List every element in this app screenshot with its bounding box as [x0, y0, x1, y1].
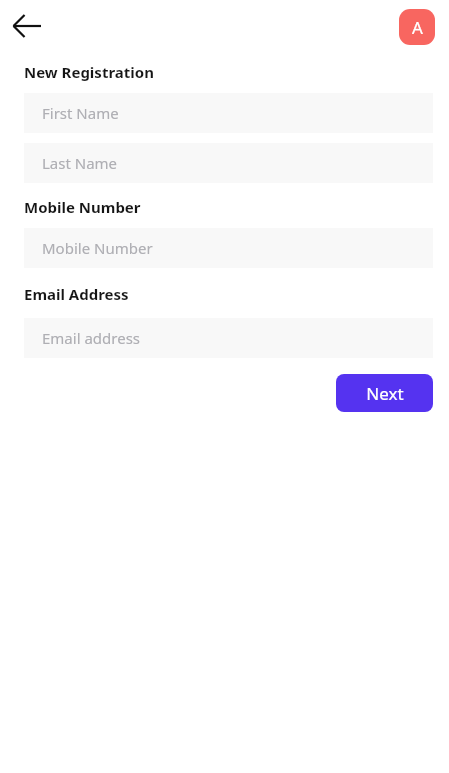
button[interactable]: Back: [6, 6, 48, 46]
button[interactable]: Email address: [24, 318, 433, 358]
staticText: A: [412, 16, 423, 39]
staticText: Last Name: [42, 153, 118, 173]
staticText: Mobile Number: [24, 197, 141, 217]
staticText: New Registration: [24, 62, 154, 82]
staticText: Email address: [42, 328, 141, 348]
button[interactable]: Next: [336, 374, 433, 412]
staticText: Mobile Number: [42, 238, 153, 258]
button[interactable]: First Name: [24, 93, 433, 133]
button[interactable]: Mobile Number: [24, 228, 433, 268]
staticText: Next: [366, 382, 404, 405]
button[interactable]: Profile: [399, 9, 435, 45]
staticText: First Name: [42, 103, 119, 123]
staticText: Email Address: [24, 284, 129, 304]
button[interactable]: Last Name: [24, 143, 433, 183]
